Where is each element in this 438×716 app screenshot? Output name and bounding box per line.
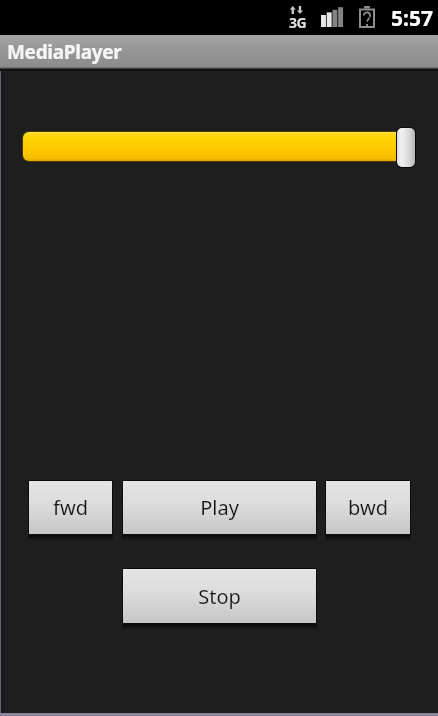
button[interactable]: Seek position (22, 127, 416, 168)
staticText: Play (200, 494, 239, 521)
button[interactable]: fwd (28, 480, 113, 535)
staticText: bwd (348, 494, 388, 521)
button[interactable]: bwd (325, 480, 411, 535)
button[interactable]: Play (122, 480, 317, 535)
staticText: 5:57 (391, 4, 433, 33)
staticText: MediaPlayer (7, 39, 122, 65)
staticText: fwd (53, 494, 88, 521)
staticText: 3G (289, 13, 307, 32)
button[interactable]: Stop (122, 568, 317, 624)
staticText: Stop (198, 583, 241, 610)
